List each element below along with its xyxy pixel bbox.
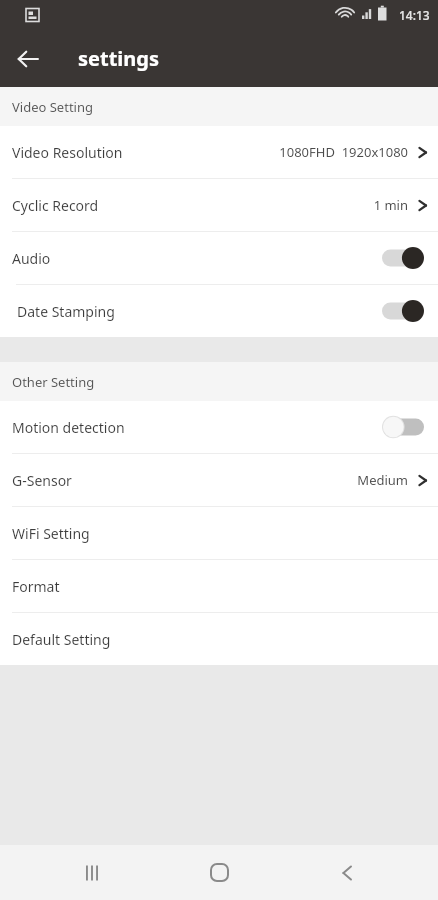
staticText: Default Setting: [12, 630, 111, 649]
staticText: Other Setting: [12, 373, 95, 391]
staticText: Motion detection: [12, 418, 125, 437]
button[interactable]: Home: [183, 845, 255, 900]
button[interactable]: Default Setting: [0, 613, 438, 665]
staticText: 1080FHD 1920x1080: [279, 143, 408, 161]
staticText: G-Sensor: [12, 471, 72, 490]
staticText: Date Stamping: [17, 302, 115, 321]
button[interactable]: Cyclic Record: [0, 179, 438, 231]
staticText: 1 min: [373, 196, 408, 214]
button[interactable]: G-Sensor: [0, 454, 438, 506]
staticText: settings: [78, 45, 159, 72]
button[interactable]: Motion detection: [0, 401, 438, 453]
staticText: Video Setting: [12, 98, 93, 116]
button[interactable]: Back: [311, 845, 383, 900]
button[interactable]: Recents: [56, 845, 128, 900]
button[interactable]: WiFi Setting: [0, 507, 438, 559]
button[interactable]: Format: [0, 560, 438, 612]
staticText: Audio: [12, 249, 51, 268]
staticText: Video Resolution: [12, 143, 123, 162]
staticText: Medium: [357, 471, 408, 489]
staticText: Format: [12, 577, 60, 596]
staticText: 14:13: [399, 7, 430, 23]
staticText: WiFi Setting: [12, 524, 90, 543]
staticText: Cyclic Record: [12, 196, 99, 215]
button[interactable]: Audio: [0, 232, 438, 284]
button[interactable]: Video Resolution: [0, 126, 438, 178]
button[interactable]: Date Stamping: [0, 285, 438, 337]
button[interactable]: Back: [0, 31, 56, 87]
